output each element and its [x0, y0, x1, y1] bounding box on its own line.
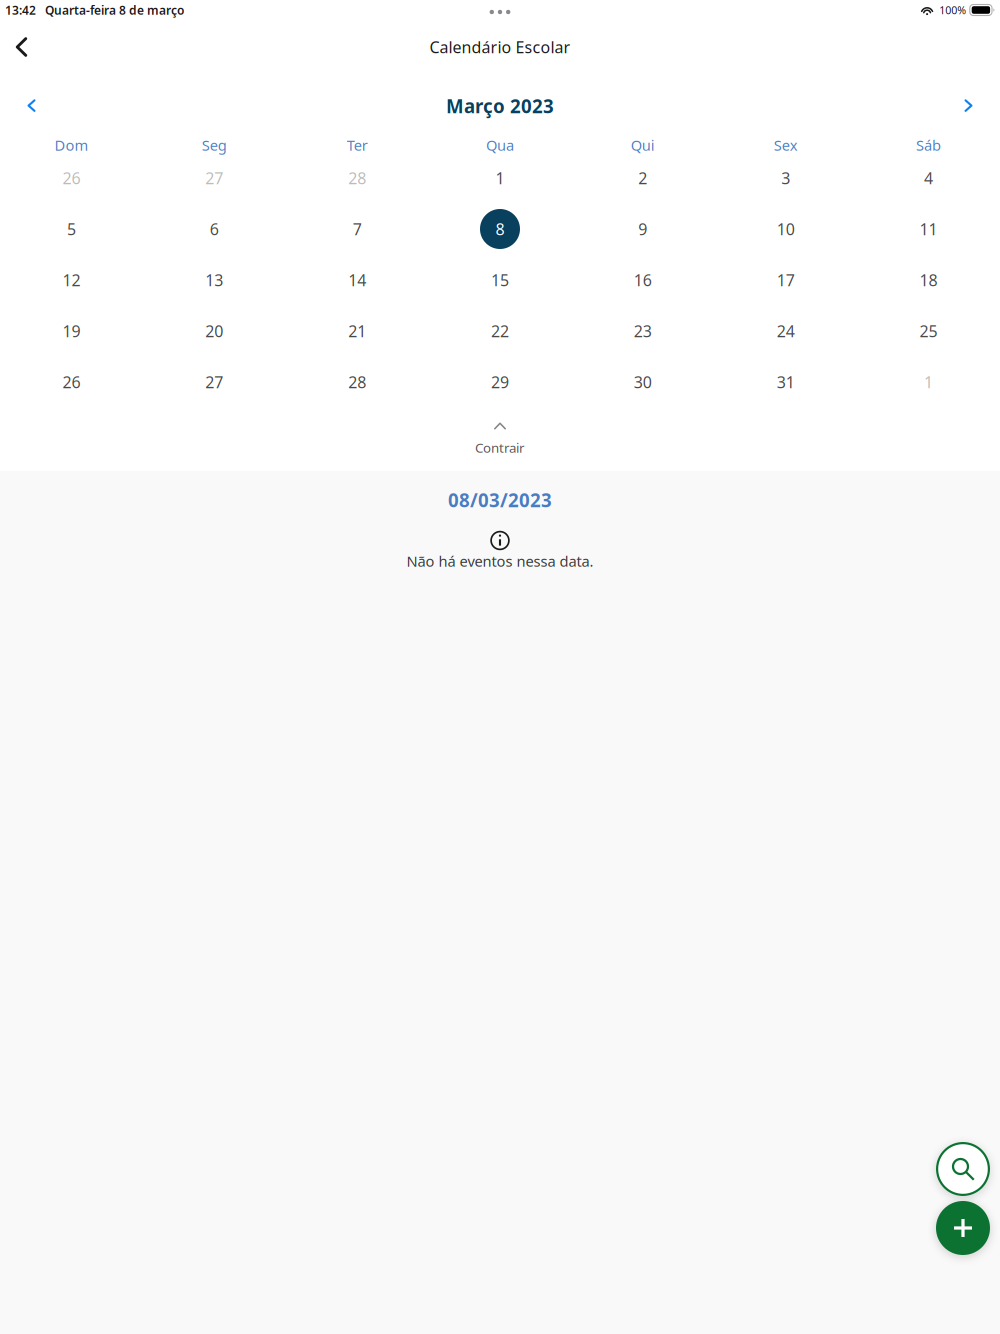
staticText: Calendário Escolar	[429, 36, 570, 58]
staticText: 20	[205, 320, 223, 342]
staticText: Ter	[347, 135, 368, 155]
button[interactable]: Pesquisar	[936, 1142, 990, 1196]
staticText: 15	[491, 269, 509, 291]
button[interactable]: 23	[571, 305, 714, 356]
staticText: 8	[495, 218, 504, 240]
staticText: 13	[205, 269, 223, 291]
staticText: 28	[348, 371, 366, 393]
button[interactable]: Voltar	[0, 25, 43, 69]
button[interactable]: 29	[429, 356, 571, 407]
button[interactable]: 2	[571, 152, 714, 203]
button[interactable]: 21	[286, 305, 429, 356]
staticText: 29	[491, 371, 509, 393]
staticText: 14	[348, 269, 366, 291]
button[interactable]: 27	[143, 356, 286, 407]
button[interactable]: 30	[571, 356, 714, 407]
staticText: 3	[781, 167, 790, 189]
button[interactable]: 18	[857, 254, 1000, 305]
button[interactable]: 7	[286, 203, 429, 254]
staticText: Não há eventos nessa data.	[406, 551, 593, 571]
staticText: 4	[924, 167, 933, 189]
button[interactable]: 27	[143, 152, 286, 203]
staticText: Contrair	[475, 439, 525, 456]
staticText: 23	[634, 320, 652, 342]
staticText: 2	[638, 167, 647, 189]
staticText: 08/03/2023	[448, 488, 552, 512]
button[interactable]: 13	[143, 254, 286, 305]
staticText: Sáb	[916, 135, 941, 155]
button[interactable]: 1	[429, 152, 571, 203]
staticText: 10	[777, 218, 795, 240]
staticText: 21	[348, 320, 366, 342]
staticText: Qua	[486, 135, 514, 155]
button[interactable]: 26	[0, 356, 143, 407]
button[interactable]: 31	[714, 356, 857, 407]
button[interactable]: 8	[429, 203, 571, 254]
button[interactable]: 5	[0, 203, 143, 254]
button[interactable]: 25	[857, 305, 1000, 356]
button[interactable]: 12	[0, 254, 143, 305]
staticText: 27	[205, 167, 223, 189]
button[interactable]: 28	[286, 356, 429, 407]
staticText: 1	[495, 167, 504, 189]
staticText: 31	[777, 371, 795, 393]
button[interactable]: 4	[857, 152, 1000, 203]
button[interactable]: 10	[714, 203, 857, 254]
staticText: 100%	[939, 3, 966, 17]
staticText: 1	[924, 371, 933, 393]
staticText: Quarta-feira 8 de março	[45, 2, 184, 18]
button[interactable]: 26	[0, 152, 143, 203]
button[interactable]: 14	[286, 254, 429, 305]
button[interactable]: 1	[857, 356, 1000, 407]
staticText: 28	[348, 167, 366, 189]
button[interactable]: 16	[571, 254, 714, 305]
button[interactable]: 19	[0, 305, 143, 356]
button[interactable]: 15	[429, 254, 571, 305]
staticText: 26	[62, 167, 80, 189]
button[interactable]: 28	[286, 152, 429, 203]
button[interactable]: 22	[429, 305, 571, 356]
staticText: 5	[67, 218, 76, 240]
staticText: 19	[62, 320, 80, 342]
staticText: 9	[638, 218, 647, 240]
staticText: 18	[920, 269, 938, 291]
button[interactable]: 17	[714, 254, 857, 305]
staticText: 12	[62, 269, 80, 291]
staticText: Qui	[631, 135, 655, 155]
staticText: Março 2023	[446, 94, 554, 118]
staticText: 13:42	[5, 2, 36, 18]
staticText: 16	[634, 269, 652, 291]
staticText: 17	[777, 269, 795, 291]
button[interactable]: Próximo mês	[946, 84, 990, 128]
staticText: 25	[920, 320, 938, 342]
staticText: 22	[491, 320, 509, 342]
staticText: Seg	[202, 135, 227, 155]
button[interactable]: 9	[571, 203, 714, 254]
staticText: 27	[205, 371, 223, 393]
button[interactable]: Mês anterior	[9, 84, 53, 128]
button[interactable]: 20	[143, 305, 286, 356]
button[interactable]: 6	[143, 203, 286, 254]
button[interactable]: 24	[714, 305, 857, 356]
staticText: 7	[353, 218, 362, 240]
button[interactable]: 11	[857, 203, 1000, 254]
staticText: 6	[210, 218, 219, 240]
staticText: 26	[62, 371, 80, 393]
staticText: Dom	[54, 135, 88, 155]
button[interactable]: Contrair	[420, 406, 580, 462]
staticText: 30	[634, 371, 652, 393]
button[interactable]: 3	[714, 152, 857, 203]
staticText: 24	[777, 320, 795, 342]
staticText: Sex	[774, 135, 798, 155]
button[interactable]: Adicionar	[936, 1201, 990, 1255]
staticText: 11	[920, 218, 938, 240]
